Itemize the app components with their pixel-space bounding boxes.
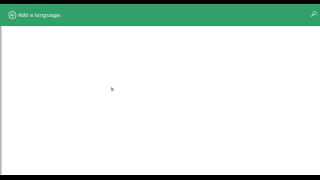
button[interactable]: Navigate up xyxy=(6,9,18,21)
button[interactable]: Search xyxy=(307,9,319,21)
button[interactable]: Add a language xyxy=(18,11,60,19)
